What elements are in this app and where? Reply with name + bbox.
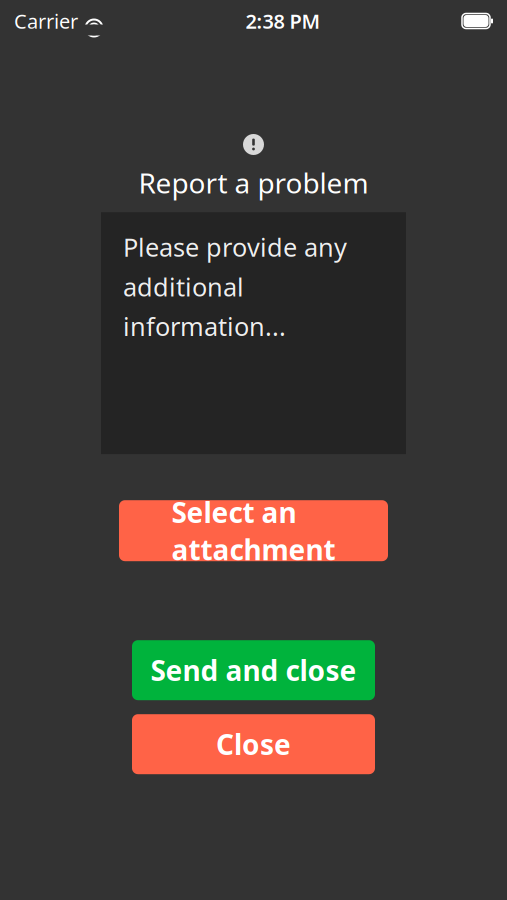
staticText: Report a problem bbox=[138, 164, 368, 201]
staticText: 2:38 PM bbox=[245, 8, 320, 34]
staticText: Select an attachment bbox=[171, 493, 335, 568]
staticText: Send and close bbox=[150, 652, 356, 689]
staticText: Close bbox=[216, 726, 291, 763]
button[interactable]: Send and close bbox=[132, 640, 375, 700]
button[interactable]: Close bbox=[132, 714, 375, 774]
button[interactable]: Select an attachment bbox=[119, 500, 388, 561]
staticText: Carrier bbox=[14, 8, 78, 34]
staticText: Please provide any additional informatio… bbox=[123, 230, 347, 343]
